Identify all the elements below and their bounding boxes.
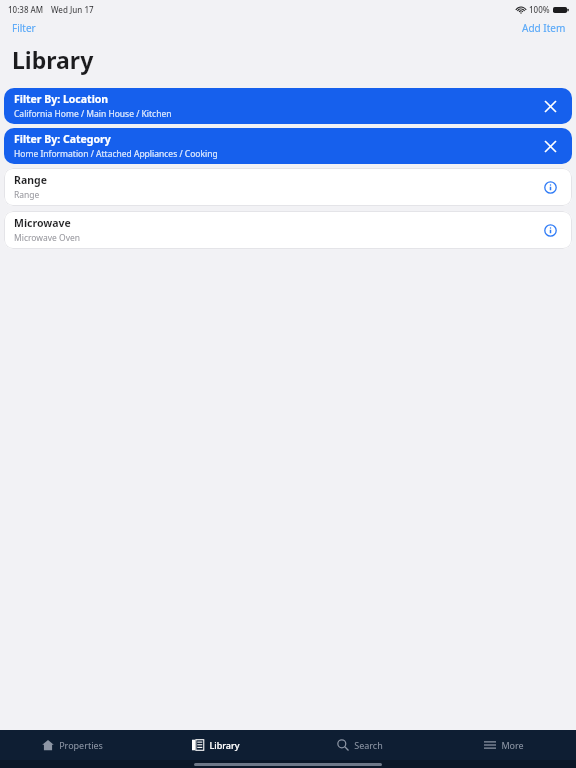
button[interactable]: Remove filter	[532, 88, 568, 124]
button[interactable]: Remove filter	[532, 128, 568, 164]
staticText: California Home / Main House / Kitchen	[14, 108, 172, 120]
staticText: Library	[12, 44, 94, 75]
staticText: Range	[14, 173, 47, 187]
staticText: Properties	[59, 739, 103, 751]
staticText: Library	[209, 739, 240, 751]
staticText: Range	[14, 189, 40, 201]
button[interactable]: Range	[4, 168, 572, 206]
staticText: Microwave	[14, 216, 71, 230]
button[interactable]: Library	[144, 730, 288, 760]
staticText: Wed Jun 17	[51, 4, 94, 15]
button[interactable]: Info	[531, 211, 569, 249]
staticText: Filter By: Category	[14, 132, 111, 146]
button[interactable]: Filter	[0, 18, 48, 38]
button[interactable]: More	[432, 730, 576, 760]
staticText: Filter	[12, 21, 36, 35]
button[interactable]: Properties	[0, 730, 144, 760]
staticText: 100%	[529, 4, 550, 15]
staticText: Add Item	[522, 21, 566, 35]
staticText: Filter By: Location	[14, 92, 109, 106]
button[interactable]: Microwave	[4, 211, 572, 249]
staticText: Microwave Oven	[14, 232, 81, 244]
staticText: Home Information / Attached Appliances /…	[14, 148, 218, 160]
button[interactable]: Info	[531, 168, 569, 206]
button[interactable]: Filter By: Category	[4, 128, 572, 164]
staticText: 10:38 AM	[8, 4, 44, 15]
staticText: Search	[354, 739, 383, 751]
button[interactable]: Filter By: Location	[4, 88, 572, 124]
staticText: More	[501, 739, 524, 751]
button[interactable]: Search	[288, 730, 432, 760]
button[interactable]: Add Item	[512, 18, 576, 38]
